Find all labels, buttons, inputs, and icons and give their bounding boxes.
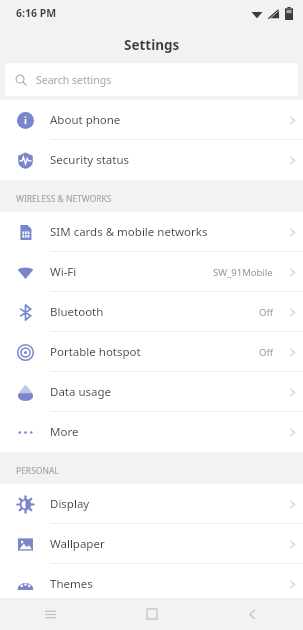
button[interactable]: Bluetooth <box>0 292 303 332</box>
staticText: More <box>50 424 281 440</box>
button[interactable]: Themes <box>0 564 303 604</box>
staticText: Themes <box>50 576 281 592</box>
button[interactable]: Data usage <box>0 372 303 412</box>
button[interactable]: Security status <box>0 140 303 180</box>
button[interactable]: Menu <box>0 598 101 630</box>
button[interactable]: More <box>0 412 303 452</box>
button[interactable]: Back <box>202 598 303 630</box>
button[interactable]: Home <box>101 598 202 630</box>
staticText: Search settings <box>36 73 112 87</box>
staticText: Wi-Fi <box>50 264 213 280</box>
button[interactable]: Wi-Fi <box>0 252 303 292</box>
staticText: Security status <box>50 152 281 168</box>
staticText: 6:16 PM <box>16 6 57 20</box>
staticText: Data usage <box>50 384 281 400</box>
button[interactable]: Portable hotspot <box>0 332 303 372</box>
button[interactable]: SIM cards & mobile networks <box>0 212 303 252</box>
staticText: Bluetooth <box>50 304 259 320</box>
staticText: PERSONAL <box>16 465 59 477</box>
staticText: Off <box>259 306 273 319</box>
staticText: About phone <box>50 112 281 128</box>
staticText: Wallpaper <box>50 536 281 552</box>
button[interactable]: Display <box>0 484 303 524</box>
staticText: Sound <box>50 609 281 625</box>
button[interactable]: About phone <box>0 100 303 140</box>
staticText: Portable hotspot <box>50 344 259 360</box>
staticText: Off <box>259 346 273 359</box>
button[interactable]: Sound <box>0 604 303 630</box>
staticText: SIM cards & mobile networks <box>50 224 281 240</box>
staticText: Settings <box>124 36 180 54</box>
staticText: Display <box>50 496 281 512</box>
button[interactable]: Wallpaper <box>0 524 303 564</box>
staticText: SW_91Mobile <box>213 266 273 279</box>
button[interactable]: Search settings <box>5 63 298 96</box>
staticText: WIRELESS & NETWORKS <box>16 193 112 205</box>
